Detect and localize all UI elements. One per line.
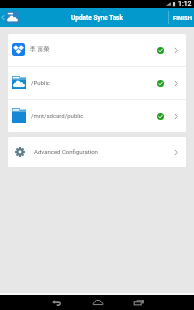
button[interactable]: Navigate up <box>0 8 19 27</box>
button[interactable]: FINISH <box>169 8 194 27</box>
button[interactable]: Advanced Configuration <box>8 137 186 167</box>
staticText: FINISH <box>173 14 192 21</box>
button[interactable]: Home <box>77 295 118 310</box>
staticText: /mnt/sdcard/public <box>31 112 84 119</box>
staticText: /Public <box>31 79 50 86</box>
button[interactable]: Recent apps <box>118 295 159 310</box>
staticText: Advanced Configuration <box>34 148 98 155</box>
button[interactable]: /Public <box>8 67 186 99</box>
button[interactable]: 李 富榮 <box>8 34 186 66</box>
staticText: 1:12 <box>178 0 192 8</box>
button[interactable]: /mnt/sdcard/public <box>8 100 186 132</box>
button[interactable]: Back <box>36 295 77 310</box>
staticText: 李 富榮 <box>30 45 50 53</box>
staticText: Update Sync Task <box>71 14 123 22</box>
